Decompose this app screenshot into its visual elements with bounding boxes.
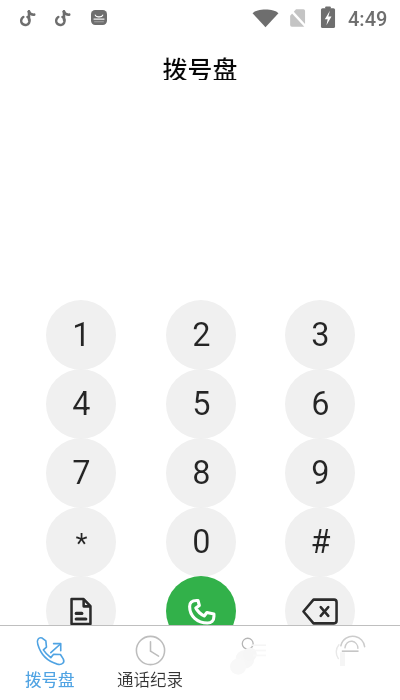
button[interactable]: Favourites <box>300 626 400 700</box>
button[interactable]: 9 <box>285 438 355 508</box>
staticText: 1 <box>72 316 91 354</box>
button[interactable]: 3 <box>285 300 355 370</box>
button[interactable]: Call <box>166 576 236 646</box>
button[interactable]: 8 <box>166 438 236 508</box>
staticText: 2 <box>192 316 211 354</box>
button[interactable]: # <box>285 507 355 577</box>
button[interactable]: 7 <box>46 438 116 508</box>
staticText: 拨号盘 <box>162 50 238 80</box>
staticText: 0 <box>192 523 211 561</box>
button[interactable]: 6 <box>285 369 355 439</box>
button[interactable]: Backspace <box>285 576 355 646</box>
button[interactable]: Notes <box>46 576 116 646</box>
staticText: 8 <box>192 454 211 492</box>
staticText: 3 <box>311 316 330 354</box>
button[interactable]: 4 <box>46 369 116 439</box>
button[interactable]: Call log <box>100 626 200 700</box>
staticText: 拨号盘 <box>25 667 75 691</box>
staticText: 5 <box>192 385 211 423</box>
button[interactable]: 2 <box>166 300 236 370</box>
staticText: 6 <box>311 385 330 423</box>
button[interactable]: Dialpad <box>0 626 100 700</box>
button[interactable]: * <box>46 507 116 577</box>
staticText: 4:49 <box>348 7 388 29</box>
staticText: * <box>75 527 88 560</box>
button[interactable]: 1 <box>46 300 116 370</box>
button[interactable]: 0 <box>166 507 236 577</box>
staticText: # <box>310 523 331 561</box>
staticText: 7 <box>72 454 91 492</box>
button[interactable]: 5 <box>166 369 236 439</box>
staticText: 4 <box>72 385 91 423</box>
button[interactable]: Contacts <box>200 626 300 700</box>
staticText: 9 <box>311 454 330 492</box>
staticText: 通话纪录 <box>117 667 183 691</box>
